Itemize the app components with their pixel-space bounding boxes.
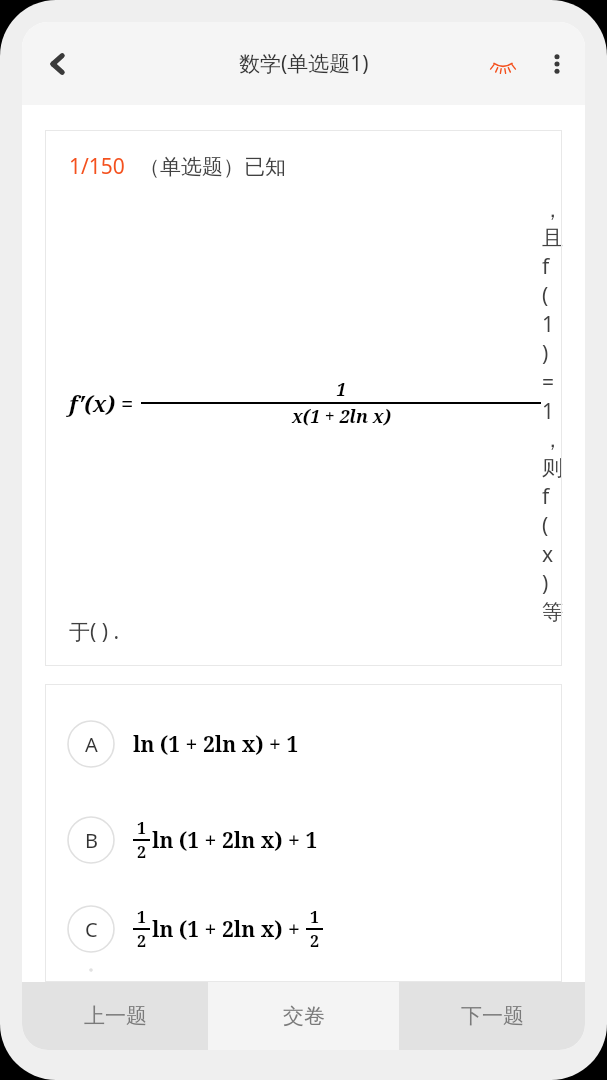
staticText: 交卷 xyxy=(283,1003,325,1029)
staticText: 1 xyxy=(336,377,347,402)
button[interactable]: Hide answers xyxy=(477,38,529,90)
button[interactable]: 1/150 xyxy=(45,130,562,666)
staticText: x(1 + 2ln x) xyxy=(292,404,391,429)
staticText: 数学(单选题1) xyxy=(239,49,369,78)
button[interactable]: B xyxy=(45,792,562,888)
staticText: ln (1 + 2ln x) + xyxy=(152,915,306,944)
staticText: f′(x) = xyxy=(69,388,134,418)
staticText: 上一题 xyxy=(84,1003,147,1029)
staticText: 于( ) . xyxy=(69,617,120,646)
staticText: 2 xyxy=(137,930,147,952)
staticText: 1 xyxy=(310,906,320,928)
staticText: ln (1 + 2ln x) + 1 xyxy=(152,826,318,855)
staticText: 1 xyxy=(137,817,147,839)
staticText: 1/150 xyxy=(69,152,125,181)
staticText: ln (1 + 2ln x) + 1 xyxy=(133,730,299,759)
staticText: A xyxy=(85,731,98,758)
staticText: （单选题）已知 xyxy=(139,154,286,180)
button[interactable]: C xyxy=(45,888,562,970)
button[interactable]: 上一题 xyxy=(22,982,208,1050)
button[interactable]: 交卷 xyxy=(208,982,399,1050)
staticText: 2 xyxy=(310,930,320,952)
button[interactable]: Back xyxy=(30,36,86,92)
staticText: 2 xyxy=(137,841,147,863)
button[interactable]: 下一题 xyxy=(399,982,585,1050)
staticText: 1 xyxy=(137,906,147,928)
button[interactable]: More options xyxy=(529,36,585,92)
staticText: C xyxy=(85,916,98,943)
staticText: B xyxy=(85,827,98,854)
staticText: 下一题 xyxy=(461,1003,524,1029)
button[interactable]: A xyxy=(45,696,562,792)
